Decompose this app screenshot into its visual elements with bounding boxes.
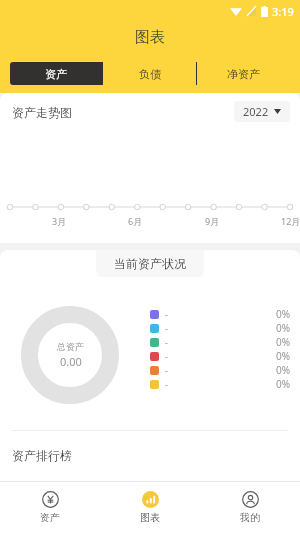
staticText: 0% [168,335,290,349]
staticText: 0.00 [60,354,82,369]
button[interactable]: 我的 [200,481,300,533]
staticText: - [165,322,168,334]
staticText: - [165,308,168,320]
staticText: - [165,336,168,348]
staticText: 资产 [40,511,60,524]
staticText: 总资产 [57,341,84,352]
staticText: 0% [168,307,290,321]
staticText: 负债 [139,67,161,81]
staticText: 资产 [45,67,67,81]
button[interactable]: 资产 [10,62,102,85]
staticText: 6月 [128,215,143,227]
staticText: 图表 [135,28,165,47]
other: 图表 [142,491,159,508]
staticText: 0% [168,349,290,363]
other: 我的 [242,491,259,508]
staticText: 图表 [140,511,160,524]
button[interactable]: 负债 [103,62,196,85]
staticText: 当前资产状况 [114,256,186,271]
staticText: 资产排行榜 [12,448,72,463]
button[interactable]: 2022 [234,101,290,122]
staticText: - [165,378,168,390]
staticText: 3:19 [272,4,294,19]
staticText: 9月 [205,215,220,227]
staticText: - [165,350,168,362]
staticText: 2022 [243,104,269,119]
staticText: 净资产 [227,67,260,81]
staticText: 我的 [240,511,260,524]
staticText: 资产走势图 [12,105,72,120]
staticText: 0% [168,321,290,335]
staticText: 12月 [281,215,300,227]
button[interactable]: 图表 [100,481,200,533]
staticText: 0% [168,377,290,391]
button[interactable]: 资产 [0,481,100,533]
staticText: 0% [168,363,290,377]
staticText: 3月 [52,215,67,227]
button[interactable]: 净资产 [197,62,290,85]
other: 资产 [42,491,59,508]
staticText: - [165,364,168,376]
